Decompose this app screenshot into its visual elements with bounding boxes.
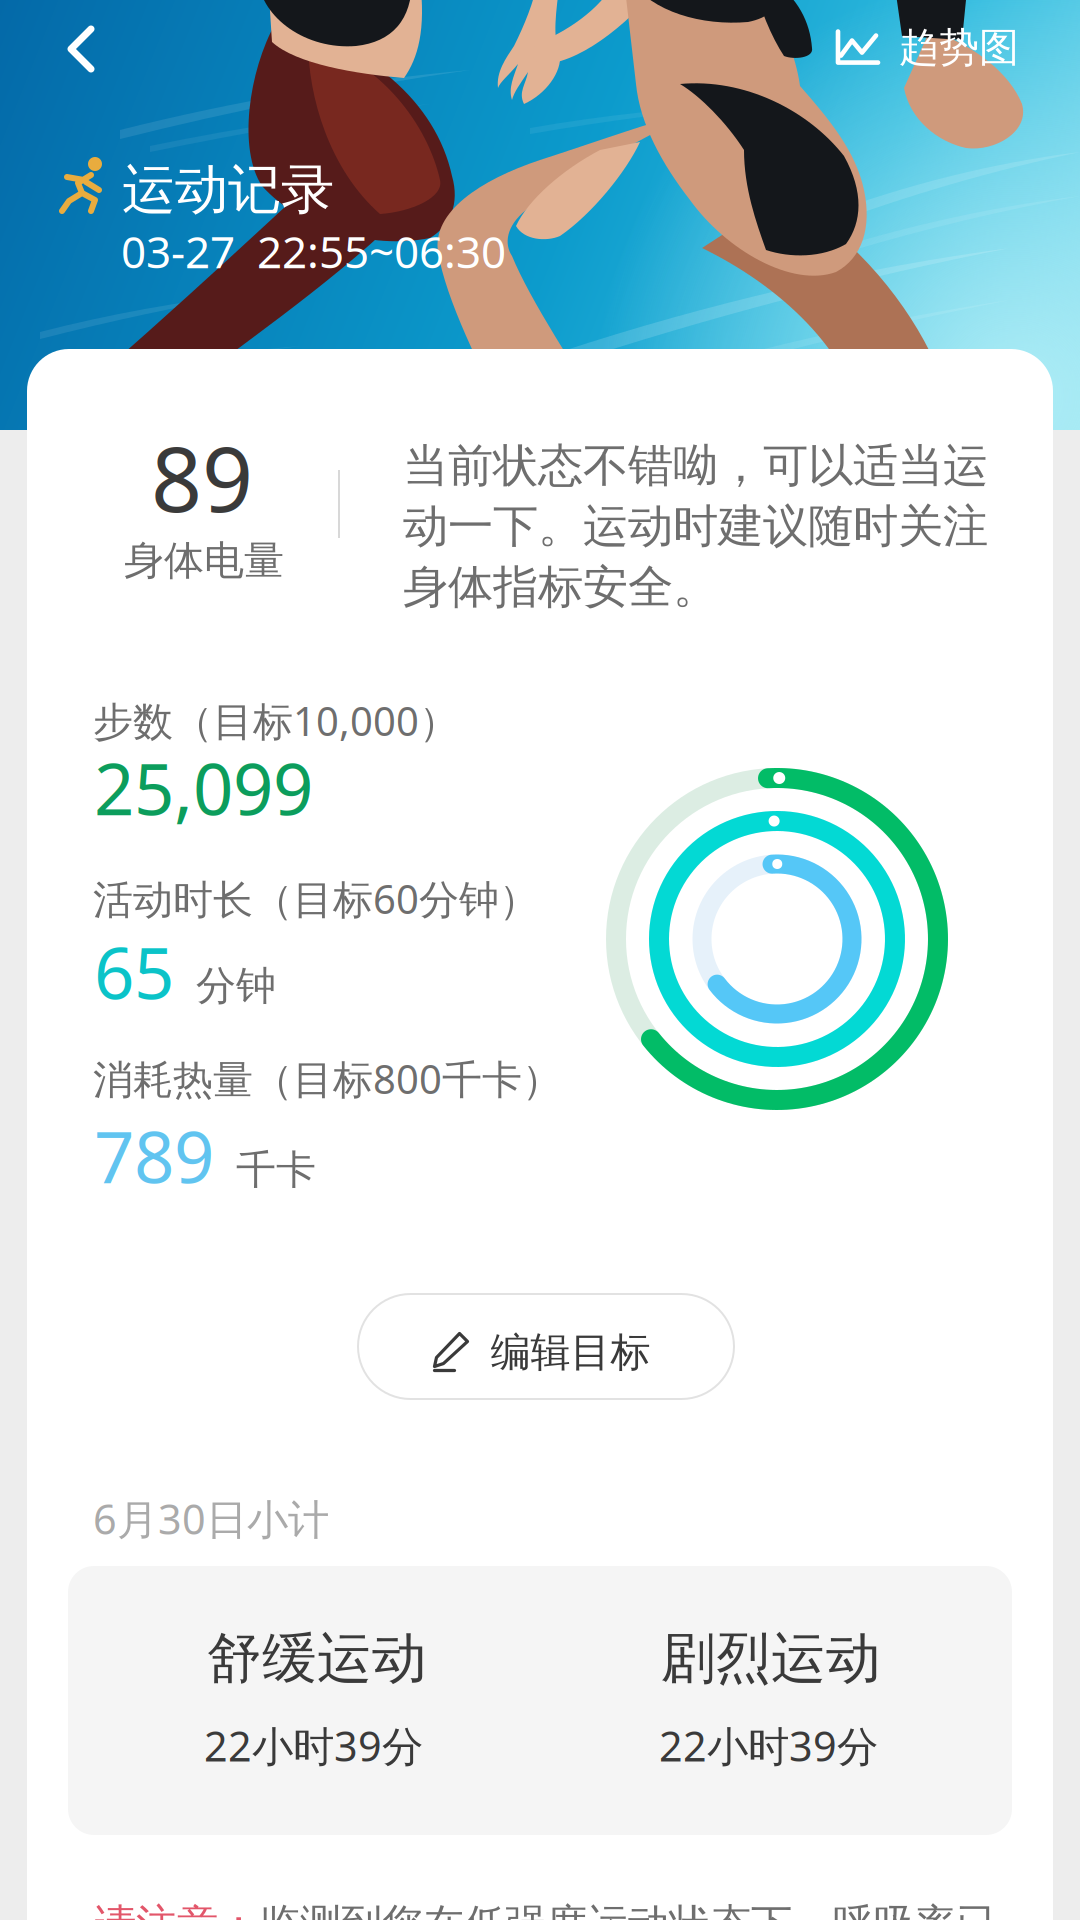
staticText: 当前状态不错呦，可以适当运动一下。运动时建议随时关注身体指标安全。: [403, 438, 988, 615]
button[interactable]: 趋势图: [799, 0, 1080, 98]
staticText: 剧烈运动: [661, 1625, 881, 1692]
staticText: 活动时长（目标60分钟）: [93, 872, 539, 925]
staticText: 请注意：: [95, 1899, 259, 1920]
staticText: 消耗热量（目标800千卡）: [93, 1052, 562, 1105]
staticText: 22小时39分: [659, 1718, 878, 1773]
button[interactable]: 编辑目标: [358, 1294, 734, 1399]
staticText: 趋势图: [899, 23, 1019, 72]
staticText: 789: [94, 1109, 214, 1203]
staticText: 6月30日小计: [93, 1491, 329, 1546]
staticText: 89: [151, 418, 253, 537]
staticText: 分钟: [196, 961, 276, 1011]
staticText: 65: [94, 925, 174, 1019]
button[interactable]: 返回: [11, 3, 153, 95]
staticText: 编辑目标: [490, 1328, 650, 1377]
staticText: 25,099: [94, 741, 313, 835]
staticText: 千卡: [236, 1145, 316, 1195]
staticText: 舒缓运动: [207, 1625, 427, 1692]
staticText: 监测到您在低强度运动状态下，呼吸率已: [259, 1899, 997, 1920]
staticText: 22小时39分: [204, 1718, 423, 1773]
staticText: 03-27 22:55~06:30: [121, 222, 506, 280]
staticText: 身体电量: [124, 536, 284, 585]
staticText: 步数（目标10,000）: [93, 694, 459, 747]
staticText: 运动记录: [122, 157, 334, 222]
